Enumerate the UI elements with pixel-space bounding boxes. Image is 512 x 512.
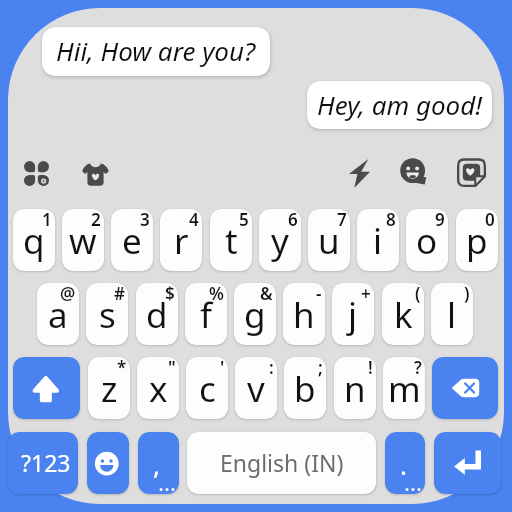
staticText: 2	[91, 209, 101, 231]
button[interactable]: !	[334, 357, 376, 419]
button[interactable]: ?123	[8, 432, 78, 494]
staticText: c	[199, 365, 216, 413]
staticText: 6	[288, 209, 298, 231]
button[interactable]: Shift	[13, 357, 80, 419]
staticText: u	[318, 217, 340, 265]
staticText: !	[368, 357, 373, 379]
staticText: ,	[153, 447, 160, 482]
staticText: &	[260, 283, 273, 305]
staticText: r	[174, 217, 189, 265]
button[interactable]: 4	[160, 209, 202, 271]
button[interactable]: Quick actions	[349, 159, 370, 188]
staticText: +	[361, 283, 371, 305]
button[interactable]: '	[186, 357, 228, 419]
staticText: e	[122, 217, 142, 265]
staticText: '	[220, 357, 225, 379]
staticText: y	[271, 217, 289, 265]
button[interactable]: "	[137, 357, 179, 419]
staticText: t	[225, 217, 238, 265]
staticText: s	[99, 291, 116, 339]
staticText: ;	[318, 357, 323, 379]
button[interactable]: 1	[13, 209, 55, 271]
button[interactable]: .	[385, 432, 425, 494]
staticText: o	[416, 217, 438, 265]
staticText: g	[244, 291, 266, 339]
staticText: k	[394, 291, 413, 339]
staticText: 9	[435, 209, 445, 231]
button[interactable]: 0	[456, 209, 498, 271]
staticText: 8	[386, 209, 396, 231]
button[interactable]: :	[235, 357, 277, 419]
button[interactable]: -	[283, 283, 325, 345]
staticText: "	[168, 357, 176, 379]
staticText: )	[464, 283, 470, 305]
staticText: English (IN)	[220, 447, 344, 478]
staticText: m	[388, 365, 421, 413]
staticText: $	[165, 283, 175, 305]
staticText: i	[373, 217, 383, 265]
button[interactable]: Emoji	[399, 157, 430, 188]
button[interactable]: ;	[284, 357, 326, 419]
staticText: p	[466, 217, 488, 265]
button[interactable]: ?	[383, 357, 425, 419]
button[interactable]: +	[332, 283, 374, 345]
staticText: 3	[140, 209, 150, 231]
staticText: q	[23, 217, 45, 265]
staticText: .	[400, 447, 407, 482]
staticText: l	[447, 291, 457, 339]
button[interactable]: @	[37, 283, 79, 345]
button[interactable]: %	[185, 283, 227, 345]
staticText: v	[247, 365, 265, 413]
button[interactable]: ,	[138, 432, 179, 494]
staticText: 7	[337, 209, 347, 231]
staticText: :	[269, 357, 274, 379]
staticText: 5	[239, 209, 249, 231]
button[interactable]: Sticker pack	[456, 157, 487, 188]
button[interactable]: 3	[111, 209, 153, 271]
button[interactable]: Emoji	[87, 432, 129, 494]
staticText: 4	[189, 209, 199, 231]
staticText: 0	[485, 209, 495, 231]
staticText: x	[149, 365, 168, 413]
staticText: @	[60, 283, 76, 305]
button[interactable]: )	[431, 283, 473, 345]
staticText: -	[316, 283, 322, 305]
staticText: w	[69, 217, 97, 265]
staticText: Hii, How are you?	[56, 33, 256, 68]
staticText: ?123	[21, 447, 71, 478]
staticText: 1	[42, 209, 52, 231]
staticText: z	[101, 365, 118, 413]
button[interactable]: (	[382, 283, 424, 345]
staticText: *	[117, 357, 127, 379]
button[interactable]: 2	[62, 209, 104, 271]
staticText: f	[200, 291, 213, 339]
staticText: #	[114, 283, 125, 305]
button[interactable]: English (IN)	[187, 432, 376, 494]
button[interactable]: *	[88, 357, 130, 419]
staticText: a	[48, 291, 68, 339]
button[interactable]: Enter	[434, 432, 501, 494]
button[interactable]: $	[136, 283, 178, 345]
button[interactable]: 8	[357, 209, 399, 271]
staticText: h	[293, 291, 315, 339]
staticText: ?	[414, 357, 422, 379]
button[interactable]: Backspace	[432, 357, 498, 419]
staticText: b	[294, 365, 316, 413]
staticText: (	[415, 283, 421, 305]
button[interactable]: Stickers	[82, 161, 109, 186]
staticText: %	[209, 283, 224, 305]
button[interactable]: Themes	[24, 161, 49, 186]
button[interactable]: 5	[210, 209, 252, 271]
staticText: n	[344, 365, 366, 413]
button[interactable]: #	[86, 283, 128, 345]
staticText: d	[146, 291, 168, 339]
staticText: j	[348, 291, 358, 339]
button[interactable]: 9	[406, 209, 448, 271]
button[interactable]: 6	[259, 209, 301, 271]
button[interactable]: 7	[308, 209, 350, 271]
button[interactable]: &	[234, 283, 276, 345]
staticText: Hey, am good!	[317, 87, 483, 122]
